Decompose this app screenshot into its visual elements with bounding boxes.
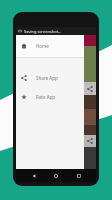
staticText: Share App xyxy=(36,75,58,81)
staticText: Rate App xyxy=(36,94,56,100)
button[interactable]: Share xyxy=(87,86,93,92)
button[interactable]: Recents xyxy=(74,171,84,181)
button[interactable]: Share App xyxy=(16,72,84,84)
staticText: Saving screenshot... xyxy=(24,29,62,34)
button[interactable]: Rate App xyxy=(16,91,84,103)
staticText: Home xyxy=(36,43,49,49)
button[interactable]: Home xyxy=(16,40,84,52)
button[interactable]: Share xyxy=(87,138,93,144)
button[interactable]: Back xyxy=(29,171,39,181)
button[interactable]: Home xyxy=(51,171,61,181)
